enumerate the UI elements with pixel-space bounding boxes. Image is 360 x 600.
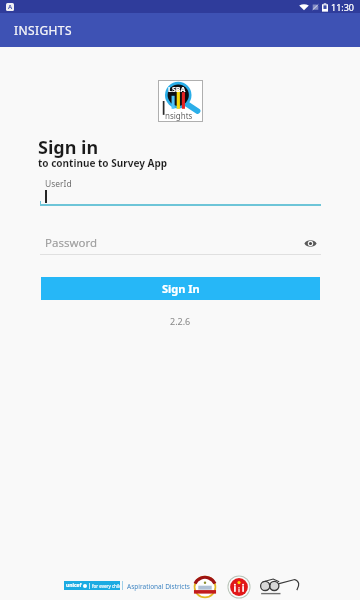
staticText: Sign in	[38, 135, 99, 160]
staticText: UserId	[45, 178, 72, 190]
staticText: to continue to Survey App	[38, 156, 168, 170]
staticText: 11:30	[331, 1, 355, 13]
staticText: Aspirational Districts	[127, 582, 190, 591]
staticText: Sign In	[162, 281, 200, 296]
staticText: nsights	[165, 110, 193, 121]
staticText: A	[8, 3, 13, 11]
button[interactable]: UserId	[40, 175, 321, 206]
staticText: Password	[45, 235, 98, 251]
staticText: LSBA	[168, 85, 186, 95]
staticText: for every child	[92, 583, 120, 589]
button[interactable]: Show password	[299, 232, 321, 254]
staticText: 2.2.6	[170, 315, 191, 327]
staticText: INSIGHTS	[14, 22, 72, 38]
button[interactable]: Sign In	[41, 277, 320, 300]
button[interactable]: Password	[40, 230, 321, 255]
staticText: unicef	[66, 582, 82, 589]
